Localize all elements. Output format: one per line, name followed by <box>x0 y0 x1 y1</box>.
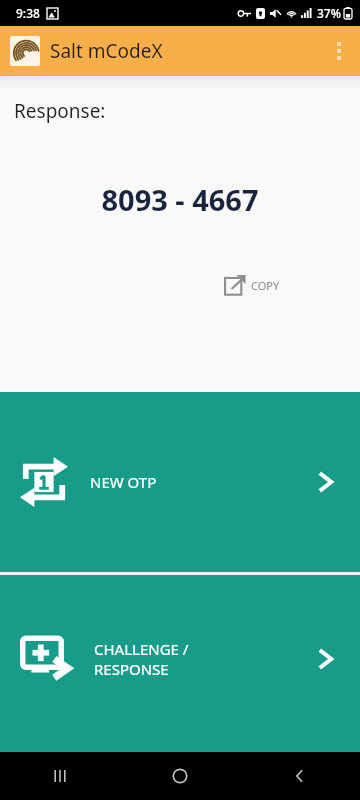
staticText: COPY <box>251 278 280 293</box>
staticText: Response: <box>14 98 106 124</box>
button[interactable]: New OTP <box>0 392 360 572</box>
button[interactable]: Back <box>240 752 360 800</box>
staticText: 37% <box>317 5 341 21</box>
staticText: CHALLENGE / RESPONSE <box>94 639 312 679</box>
button[interactable]: Recents <box>0 752 120 800</box>
button[interactable]: More options <box>318 26 360 76</box>
staticText: 8093 - 4667 <box>0 180 360 219</box>
staticText: 9:38 <box>16 5 40 21</box>
staticText: Salt mCodeX <box>50 38 163 64</box>
button[interactable]: Home <box>120 752 240 800</box>
button[interactable]: Challenge response <box>0 575 360 743</box>
button[interactable]: COPY <box>220 268 284 302</box>
staticText: NEW OTP <box>90 472 312 492</box>
